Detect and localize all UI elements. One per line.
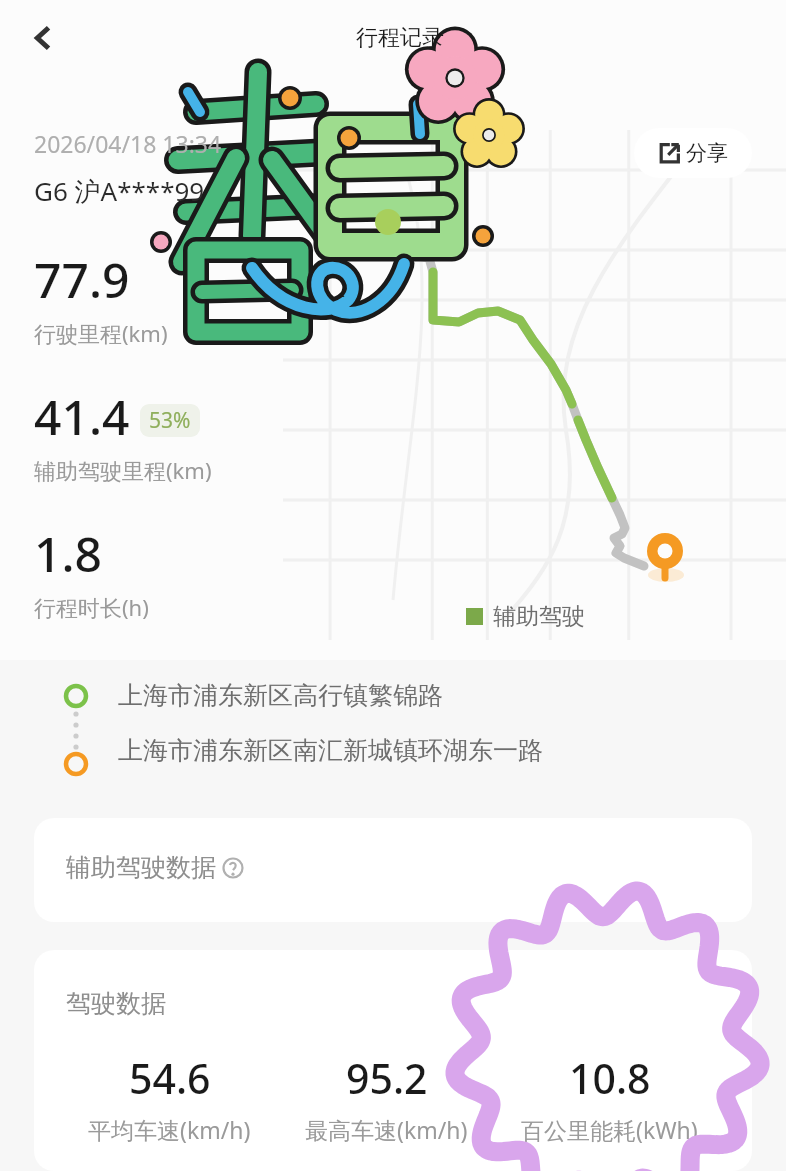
staticText: 行驶里程(km) xyxy=(34,318,168,348)
staticText: 驾驶数据 xyxy=(66,988,166,1019)
staticText: 百公里能耗(kWh) xyxy=(521,1114,698,1145)
staticText: 54.6 xyxy=(129,1050,211,1106)
staticText: 行程记录 xyxy=(356,24,444,52)
staticText: 上海市浦东新区南汇新城镇环湖东一路 xyxy=(118,735,543,766)
staticText: 1.8 xyxy=(34,521,102,586)
staticText: 行程时长(h) xyxy=(34,592,149,622)
button[interactable]: 分享 xyxy=(634,128,752,178)
staticText: G6 沪A****99 xyxy=(34,173,205,209)
staticText: 41.4 xyxy=(34,384,130,449)
staticText: 53% xyxy=(149,406,191,435)
staticText: 辅助驾驶 xyxy=(493,602,585,631)
staticText: 95.2 xyxy=(346,1050,428,1106)
staticText: 上海市浦东新区高行镇繁锦路 xyxy=(118,680,443,711)
button[interactable]: 辅助驾驶数据 xyxy=(34,818,752,922)
staticText: 10.8 xyxy=(569,1050,651,1106)
staticText: 最高车速(km/h) xyxy=(305,1114,468,1145)
staticText: 2026/04/18 13:34 xyxy=(34,128,222,159)
staticText: 平均车速(km/h) xyxy=(88,1114,251,1145)
staticText: 辅助驾驶里程(km) xyxy=(34,455,212,485)
staticText: 77.9 xyxy=(34,247,130,312)
staticText: 分享 xyxy=(686,140,728,166)
button[interactable]: Back xyxy=(14,10,70,66)
staticText: 辅助驾驶数据 xyxy=(66,852,216,883)
